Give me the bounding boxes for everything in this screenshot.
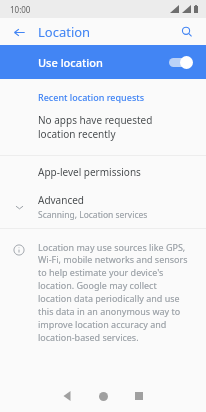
button[interactable]: Back xyxy=(6,19,32,45)
button[interactable]: App-level permissions xyxy=(0,156,206,187)
button[interactable]: Use location xyxy=(0,45,206,79)
staticText: Use location xyxy=(38,55,103,70)
staticText: Location xyxy=(38,23,91,41)
staticText: Advanced xyxy=(38,193,84,207)
staticText: 10:00 xyxy=(10,4,31,15)
staticText: Location may use sources like GPS, Wi-Fi… xyxy=(38,241,192,344)
button[interactable]: Search xyxy=(174,19,200,45)
button[interactable]: Home xyxy=(85,380,121,412)
button[interactable]: Back xyxy=(49,380,85,412)
staticText: No apps have requested location recently xyxy=(38,113,190,141)
staticText: App-level permissions xyxy=(38,165,141,179)
staticText: Scanning, Location services xyxy=(38,209,148,221)
staticText: Recent location requests xyxy=(38,91,145,103)
button[interactable]: Recent apps xyxy=(121,380,157,412)
button[interactable]: Advanced xyxy=(0,187,206,226)
